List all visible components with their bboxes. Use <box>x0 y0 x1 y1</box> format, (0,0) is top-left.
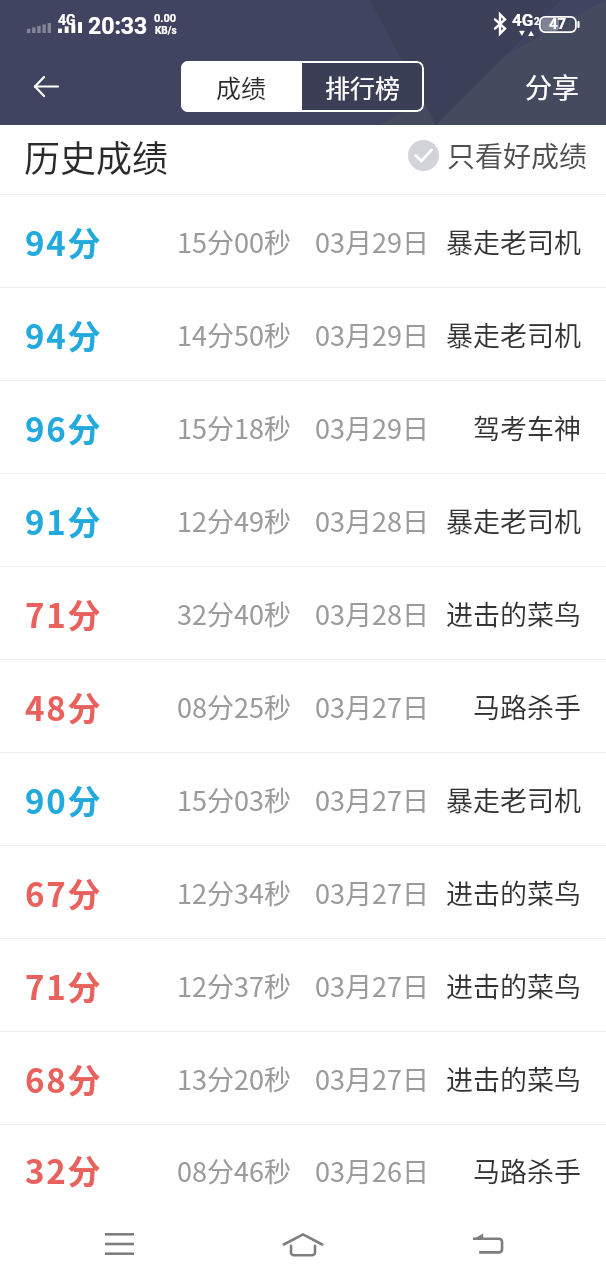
staticText: 暴走老司机 <box>446 501 581 540</box>
staticText: 03月27日 <box>315 780 429 819</box>
staticText: 只看好成绩 <box>447 135 588 176</box>
staticText: 03月28日 <box>315 594 429 633</box>
staticText: 48分 <box>25 683 103 731</box>
button[interactable]: 成绩 <box>181 61 302 112</box>
staticText: 94分 <box>25 311 103 359</box>
button[interactable]: 71分 <box>0 567 606 660</box>
staticText: 94分 <box>25 218 103 266</box>
button[interactable]: Back <box>441 1211 533 1276</box>
staticText: 08分46秒 <box>177 1151 291 1190</box>
staticText: 2 <box>534 16 540 28</box>
staticText: 15分18秒 <box>177 408 291 447</box>
staticText: 分享 <box>525 67 579 106</box>
button[interactable]: 只看好成绩 <box>408 135 588 176</box>
staticText: 0.00 <box>154 12 177 25</box>
staticText: 进击的菜鸟 <box>446 966 581 1005</box>
button[interactable]: Back <box>0 48 92 125</box>
staticText: 91分 <box>25 497 103 545</box>
staticText: 32分 <box>25 1146 103 1194</box>
staticText: 13分20秒 <box>177 1059 291 1098</box>
staticText: 03月29日 <box>315 222 429 261</box>
staticText: 排行榜 <box>325 69 401 105</box>
staticText: 驾考车神 <box>473 408 581 447</box>
staticText: 成绩 <box>216 69 267 105</box>
staticText: 15分03秒 <box>177 780 291 819</box>
staticText: 03月27日 <box>315 873 429 912</box>
button[interactable]: 94分 <box>0 195 606 288</box>
staticText: 03月27日 <box>315 966 429 1005</box>
staticText: 03月28日 <box>315 501 429 540</box>
staticText: 67分 <box>25 869 103 917</box>
button[interactable]: 96分 <box>0 381 606 474</box>
staticText: 96分 <box>25 404 103 452</box>
staticText: 03月27日 <box>315 687 429 726</box>
button[interactable]: 91分 <box>0 474 606 567</box>
staticText: 历史成绩 <box>24 130 169 182</box>
staticText: 90分 <box>25 776 103 824</box>
staticText: 暴走老司机 <box>446 780 581 819</box>
button[interactable]: 32分 <box>0 1125 606 1215</box>
staticText: 马路杀手 <box>473 1151 581 1190</box>
staticText: 03月29日 <box>315 408 429 447</box>
button[interactable]: 94分 <box>0 288 606 381</box>
staticText: 03月27日 <box>315 1059 429 1098</box>
button[interactable]: 68分 <box>0 1032 606 1125</box>
staticText: 12分34秒 <box>177 873 291 912</box>
staticText: 68分 <box>25 1055 103 1103</box>
staticText: 12分37秒 <box>177 966 291 1005</box>
staticText: 进击的菜鸟 <box>446 1059 581 1098</box>
button[interactable]: Home <box>257 1211 349 1276</box>
staticText: KB/s <box>155 25 177 37</box>
staticText: 进击的菜鸟 <box>446 594 581 633</box>
staticText: 32分40秒 <box>177 594 291 633</box>
staticText: 4G <box>512 10 534 30</box>
button[interactable]: 67分 <box>0 846 606 939</box>
staticText: 进击的菜鸟 <box>446 873 581 912</box>
staticText: 03月29日 <box>315 315 429 354</box>
staticText: 08分25秒 <box>177 687 291 726</box>
staticText: 4G <box>58 12 76 28</box>
button[interactable]: 分享 <box>498 48 606 125</box>
staticText: 暴走老司机 <box>446 222 581 261</box>
button[interactable]: Recent apps <box>73 1211 165 1276</box>
staticText: 03月26日 <box>315 1151 429 1190</box>
staticText: 暴走老司机 <box>446 315 581 354</box>
staticText: 71分 <box>25 590 103 638</box>
staticText: 15分00秒 <box>177 222 291 261</box>
button[interactable]: 90分 <box>0 753 606 846</box>
staticText: 20:33 <box>88 13 148 40</box>
staticText: 14分50秒 <box>177 315 291 354</box>
staticText: 71分 <box>25 962 103 1010</box>
button[interactable]: 48分 <box>0 660 606 753</box>
staticText: 12分49秒 <box>177 501 291 540</box>
staticText: 47 <box>549 15 567 33</box>
staticText: 马路杀手 <box>473 687 581 726</box>
button[interactable]: 71分 <box>0 939 606 1032</box>
button[interactable]: 排行榜 <box>302 61 424 112</box>
